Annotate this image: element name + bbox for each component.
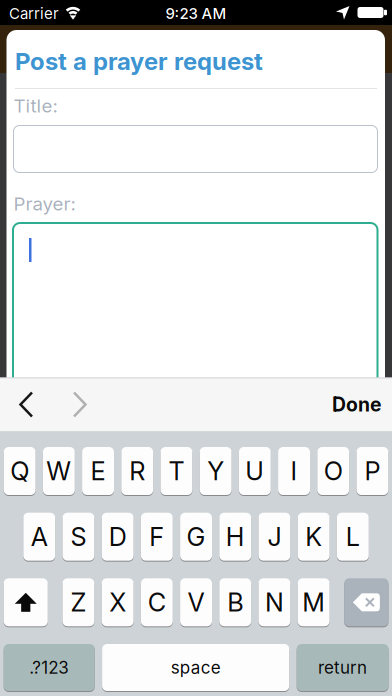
staticText: Post a prayer request [15,47,263,76]
button[interactable]: S [62,513,94,562]
staticText: Title: [13,94,57,117]
button[interactable] [12,222,378,387]
staticText: R [129,456,145,486]
button[interactable]: L [337,513,369,562]
button[interactable]: A [23,513,55,562]
staticText: Y [207,456,224,486]
staticText: X [109,587,126,618]
staticText: L [346,521,360,552]
button[interactable] [4,578,48,627]
staticText: M [302,587,325,618]
staticText: T [168,456,184,486]
staticText: 9:23 AM [165,4,226,23]
button[interactable] [16,391,38,417]
button[interactable]: C [141,578,173,627]
staticText: J [267,521,281,552]
button[interactable]: Q [4,447,36,496]
button[interactable]: N [258,578,290,627]
staticText: Q [10,456,29,486]
staticText: U [245,456,264,486]
staticText: K [305,521,322,552]
staticText: N [265,587,284,618]
staticText: V [187,587,204,618]
button[interactable]: I [278,447,310,496]
staticText: W [46,456,71,486]
button[interactable]: K [298,513,330,562]
button[interactable]: W [43,447,75,496]
staticText: Done [332,393,381,416]
button[interactable]: H [219,513,251,562]
staticText: Prayer: [13,192,75,215]
staticText: H [226,521,245,552]
button[interactable]: T [160,447,192,496]
button[interactable]: P [356,447,388,496]
button[interactable]: B [219,578,251,627]
button[interactable]: Done [332,393,392,416]
staticText: I [291,456,298,486]
staticText: G [186,521,205,552]
button[interactable]: E [82,447,114,496]
staticText: P [364,456,380,486]
staticText: E [90,456,105,486]
button[interactable]: Y [200,447,232,496]
button[interactable]: G [180,513,212,562]
button[interactable]: F [141,513,173,562]
button[interactable]: J [258,513,290,562]
staticText: F [149,521,164,552]
staticText: A [31,521,48,552]
staticText: space [171,657,221,678]
button[interactable]: space [102,644,289,692]
button[interactable]: .?123 [4,644,95,692]
staticText: B [227,587,243,618]
button[interactable] [13,125,378,173]
staticText: return [318,657,367,678]
button[interactable] [344,578,388,627]
staticText: .?123 [29,657,69,678]
button[interactable]: R [121,447,153,496]
button[interactable]: X [102,578,134,627]
staticText: S [70,521,86,552]
button[interactable]: V [180,578,212,627]
button[interactable]: D [102,513,134,562]
staticText: O [324,456,343,486]
staticText: C [148,587,166,618]
staticText: Carrier [9,4,59,23]
button[interactable]: return [297,644,388,692]
button[interactable]: U [239,447,271,496]
staticText: D [109,521,127,552]
button[interactable]: M [298,578,330,627]
button[interactable] [68,391,90,417]
button[interactable]: Z [62,578,94,627]
button[interactable]: O [317,447,349,496]
staticText: Z [70,587,86,618]
